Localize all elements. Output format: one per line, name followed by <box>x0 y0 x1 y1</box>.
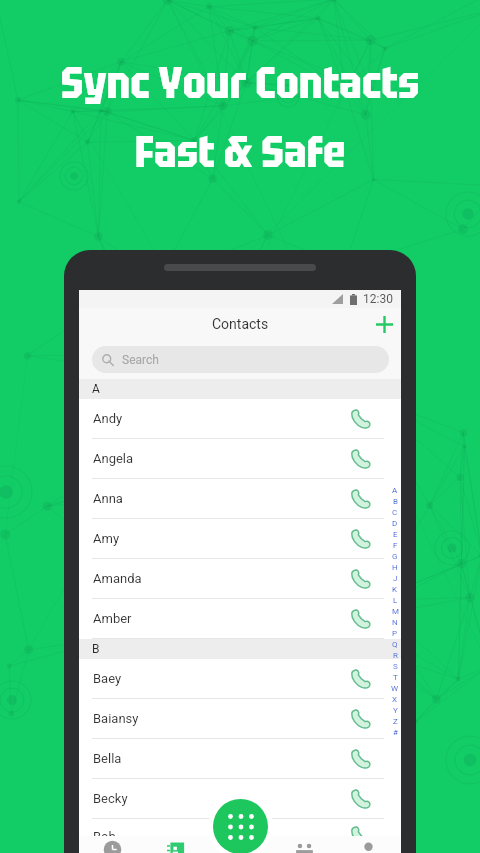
staticText: Amanda <box>93 571 142 586</box>
button[interactable]: Amy <box>79 519 401 558</box>
staticText: Fast & Safe <box>0 122 480 180</box>
staticText: H <box>392 563 398 574</box>
staticText: K <box>392 585 398 596</box>
staticText: J <box>393 574 398 585</box>
button[interactable]: Groups <box>284 836 324 853</box>
button[interactable]: Dialpad <box>213 799 268 853</box>
staticText: Amber <box>93 611 132 626</box>
staticText: Q <box>392 640 398 651</box>
staticText: E <box>393 530 398 541</box>
staticText: Baey <box>93 671 122 686</box>
staticText: P <box>392 629 398 640</box>
button[interactable]: Call Bob <box>350 825 372 847</box>
staticText: G <box>392 552 398 563</box>
button[interactable]: Call Anna <box>350 488 372 510</box>
staticText: X <box>392 695 398 706</box>
staticText: Sync Your Contacts <box>0 53 480 111</box>
button[interactable]: Andy <box>79 399 401 438</box>
button[interactable]: Call Baey <box>350 668 372 690</box>
button[interactable]: Call Angela <box>350 448 372 470</box>
staticText: Andy <box>93 411 123 426</box>
staticText: Becky <box>93 791 128 806</box>
button[interactable]: Baiansy <box>79 699 401 738</box>
button[interactable]: Baey <box>79 659 401 698</box>
button[interactable]: Contacts <box>156 836 196 853</box>
staticText: D <box>392 519 398 530</box>
button[interactable]: Call Becky <box>350 788 372 810</box>
staticText: T <box>393 673 398 684</box>
staticText: L <box>393 596 398 607</box>
staticText: # <box>393 728 398 739</box>
staticText: R <box>393 651 398 662</box>
button[interactable]: Becky <box>79 779 401 818</box>
staticText: Search <box>122 353 159 367</box>
button[interactable]: Add contact <box>373 313 395 335</box>
button[interactable]: Amber <box>79 599 401 638</box>
staticText: Bob <box>93 829 116 844</box>
button[interactable]: Profile <box>348 836 388 853</box>
staticText: M <box>392 607 399 618</box>
button[interactable]: Call Baiansy <box>350 708 372 730</box>
staticText: Y <box>393 706 398 717</box>
button[interactable]: Search <box>92 346 389 373</box>
staticText: 12:30 <box>363 292 393 306</box>
staticText: Contacts <box>212 316 269 332</box>
staticText: A <box>92 382 100 396</box>
staticText: B <box>393 497 398 508</box>
button[interactable]: Call Amber <box>350 608 372 630</box>
button[interactable]: Anna <box>79 479 401 518</box>
button[interactable]: Call Andy <box>350 408 372 430</box>
button[interactable]: Call Amy <box>350 528 372 550</box>
button[interactable]: Call Bella <box>350 748 372 770</box>
staticText: S <box>393 662 398 673</box>
staticText: Baiansy <box>93 711 139 726</box>
button[interactable]: Call Amanda <box>350 568 372 590</box>
staticText: B <box>92 642 100 656</box>
button[interactable]: Bob <box>79 819 401 853</box>
staticText: N <box>392 618 398 629</box>
staticText: Amy <box>93 531 120 546</box>
staticText: W <box>391 684 399 695</box>
staticText: Anna <box>93 491 123 506</box>
staticText: Z <box>393 717 398 728</box>
button[interactable]: Recents <box>92 836 132 853</box>
button[interactable]: Bella <box>79 739 401 778</box>
staticText: C <box>392 508 398 519</box>
button[interactable]: Amanda <box>79 559 401 598</box>
staticText: F <box>393 541 398 552</box>
staticText: A <box>392 486 398 497</box>
staticText: Angela <box>93 451 134 466</box>
button[interactable]: Angela <box>79 439 401 478</box>
staticText: Bella <box>93 751 122 766</box>
